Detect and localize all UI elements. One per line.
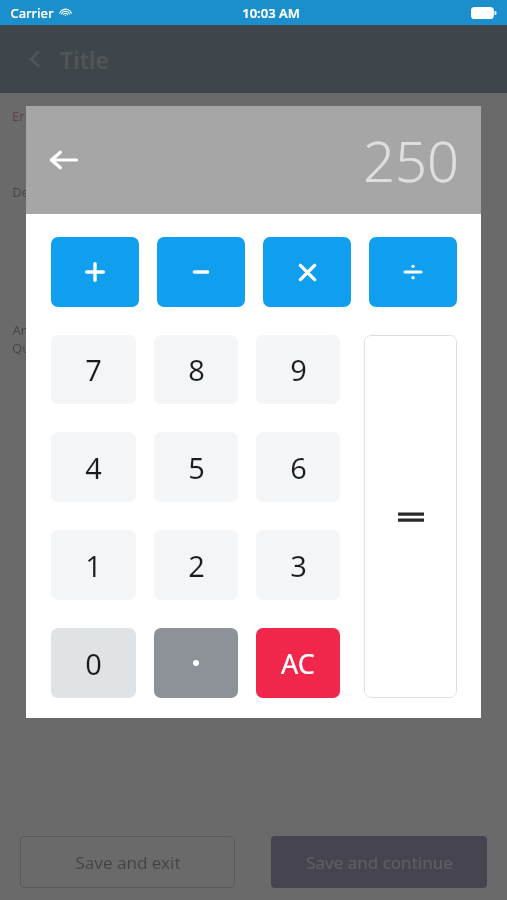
staticText: 7 <box>85 350 102 389</box>
button[interactable]: + <box>51 237 139 307</box>
staticText: 9 <box>290 350 307 389</box>
button[interactable]: 0 <box>51 628 136 698</box>
staticText: 6 <box>290 448 307 487</box>
button[interactable]: Equals <box>364 335 457 698</box>
button[interactable]: 4 <box>51 432 136 502</box>
staticText: 250 <box>363 122 459 198</box>
staticText: 3 <box>290 546 307 585</box>
staticText: Save and exit <box>75 851 181 874</box>
button[interactable]: Back <box>18 42 52 76</box>
button[interactable]: 5 <box>154 432 238 502</box>
staticText: Details <box>12 183 54 201</box>
button[interactable]: Back <box>40 136 88 184</box>
button[interactable]: ÷ <box>369 237 457 307</box>
staticText: Save and continue <box>306 851 453 874</box>
button[interactable]: 1 <box>51 530 136 600</box>
button[interactable]: 3 <box>256 530 340 600</box>
staticText: AC <box>281 645 315 682</box>
staticText: 1 <box>85 546 102 585</box>
staticText: 2 <box>188 546 205 585</box>
staticText: 5 <box>188 448 205 487</box>
staticText: Quantity <box>12 339 65 357</box>
staticText: 8 <box>188 350 205 389</box>
staticText: 10:03 AM <box>242 4 300 22</box>
button[interactable]: 8 <box>154 335 238 404</box>
staticText: Carrier <box>10 4 54 22</box>
button[interactable]: - <box>157 237 245 307</box>
button[interactable]: 9 <box>256 335 340 404</box>
staticText: 0 <box>85 644 102 683</box>
button[interactable]: 6 <box>256 432 340 502</box>
button[interactable]: Decimal point <box>154 628 238 698</box>
button[interactable]: Save and exit <box>20 836 235 888</box>
staticText: Error <box>12 107 43 125</box>
staticText: Amount <box>12 321 62 339</box>
button[interactable]: 2 <box>154 530 238 600</box>
staticText: Title <box>60 44 109 75</box>
staticText: 4 <box>85 448 102 487</box>
button[interactable]: AC <box>256 628 340 698</box>
button[interactable]: 7 <box>51 335 136 404</box>
button[interactable]: × <box>263 237 351 307</box>
button[interactable]: Save and continue <box>271 836 487 888</box>
